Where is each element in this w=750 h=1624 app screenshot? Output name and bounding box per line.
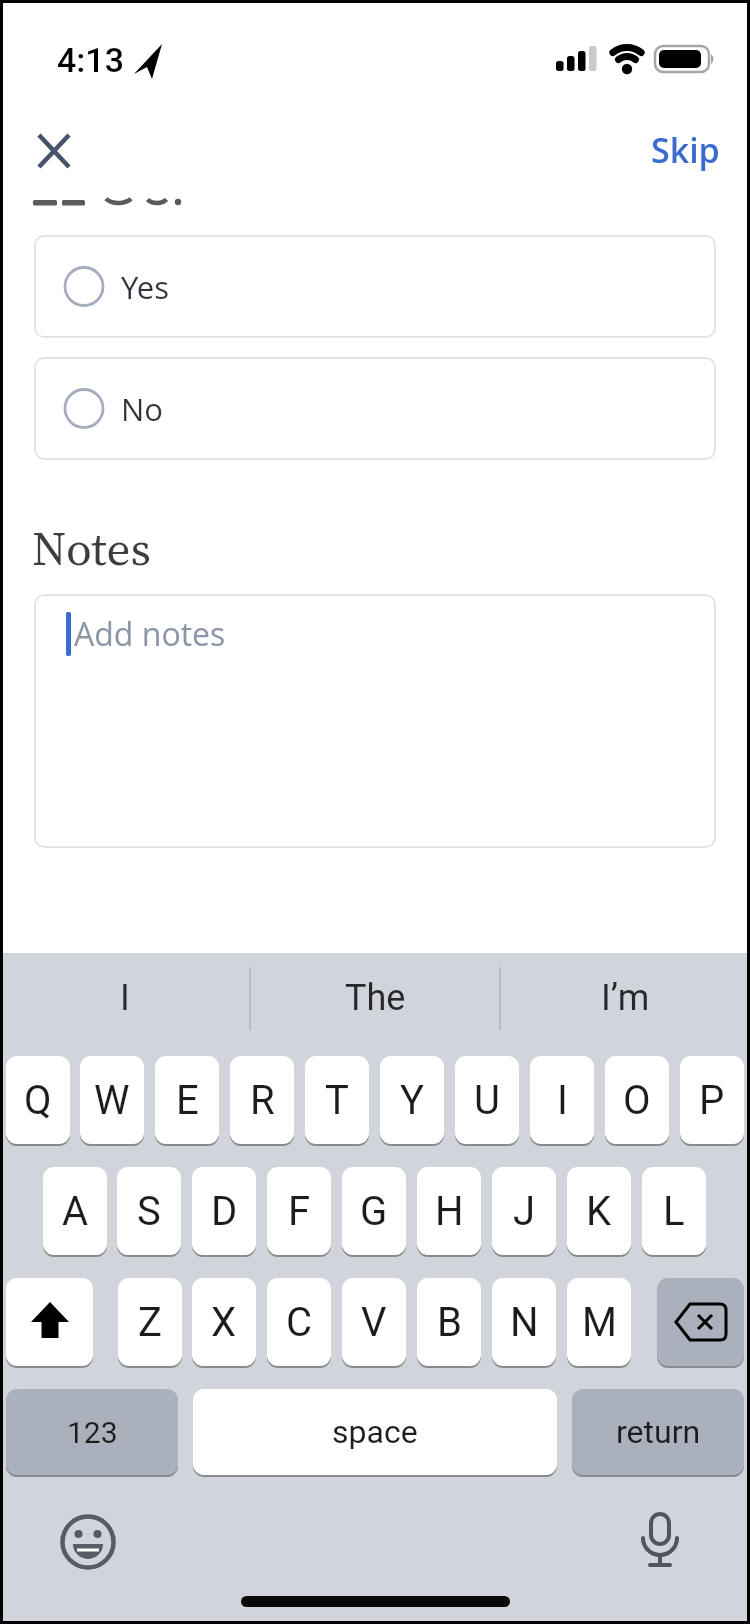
button[interactable]: C bbox=[267, 1278, 331, 1366]
staticText: B bbox=[437, 1299, 462, 1346]
staticText: Q bbox=[24, 1077, 52, 1124]
staticText: Notes bbox=[32, 516, 151, 580]
button[interactable]: H bbox=[417, 1167, 481, 1255]
button[interactable]: W bbox=[80, 1056, 144, 1144]
staticText: M bbox=[582, 1299, 617, 1346]
button[interactable]: P bbox=[680, 1056, 744, 1144]
staticText: The bbox=[345, 977, 406, 1019]
button[interactable] bbox=[657, 1278, 744, 1366]
button[interactable]: Q bbox=[6, 1056, 70, 1144]
staticText: I’m bbox=[601, 977, 650, 1019]
staticText: P bbox=[699, 1077, 725, 1124]
button[interactable]: space bbox=[193, 1389, 557, 1475]
button[interactable]: Yes bbox=[34, 235, 716, 338]
staticText: Yes bbox=[121, 266, 169, 308]
button[interactable]: Y bbox=[380, 1056, 444, 1144]
staticText: T bbox=[325, 1077, 349, 1124]
staticText: V bbox=[361, 1299, 387, 1346]
button[interactable]: I bbox=[0, 953, 250, 1043]
button[interactable]: S bbox=[117, 1167, 181, 1255]
staticText: U bbox=[474, 1077, 500, 1124]
staticText: D bbox=[211, 1188, 238, 1235]
button[interactable]: T bbox=[305, 1056, 369, 1144]
staticText: W bbox=[94, 1077, 130, 1124]
button[interactable]: Skip bbox=[620, 125, 720, 175]
button[interactable]: R bbox=[230, 1056, 294, 1144]
button[interactable] bbox=[60, 1514, 118, 1572]
staticText: space bbox=[332, 1413, 418, 1451]
button[interactable]: M bbox=[567, 1278, 631, 1366]
button[interactable]: 123 bbox=[6, 1389, 178, 1475]
staticText: J bbox=[513, 1188, 536, 1235]
staticText: No bbox=[121, 388, 164, 430]
staticText: Skip bbox=[651, 127, 720, 173]
staticText: Y bbox=[400, 1077, 425, 1124]
button[interactable]: G bbox=[342, 1167, 406, 1255]
staticText: C bbox=[286, 1299, 313, 1346]
staticText: 123 bbox=[67, 1415, 118, 1450]
button[interactable]: J bbox=[492, 1167, 556, 1255]
staticText: H bbox=[435, 1188, 464, 1235]
staticText: G bbox=[360, 1188, 388, 1235]
button[interactable] bbox=[632, 1510, 688, 1574]
button[interactable]: V bbox=[342, 1278, 406, 1366]
staticText: return bbox=[616, 1413, 701, 1451]
button[interactable]: U bbox=[455, 1056, 519, 1144]
button[interactable]: L bbox=[642, 1167, 706, 1255]
button[interactable]: Z bbox=[118, 1278, 182, 1366]
button[interactable]: K bbox=[567, 1167, 631, 1255]
staticText: I bbox=[120, 977, 130, 1019]
button[interactable]: No bbox=[34, 357, 716, 460]
button[interactable]: O bbox=[605, 1056, 669, 1144]
staticText: Add notes bbox=[74, 612, 226, 656]
button[interactable]: I’m bbox=[500, 953, 750, 1043]
staticText: S bbox=[137, 1188, 161, 1235]
staticText: F bbox=[288, 1188, 311, 1235]
button[interactable]: X bbox=[192, 1278, 256, 1366]
button[interactable]: Add notes bbox=[34, 594, 716, 848]
button[interactable]: N bbox=[492, 1278, 556, 1366]
staticText: Z bbox=[138, 1299, 162, 1346]
staticText: E bbox=[176, 1077, 199, 1124]
staticText: 4:13 bbox=[57, 40, 124, 80]
button[interactable]: F bbox=[267, 1167, 331, 1255]
button[interactable]: B bbox=[417, 1278, 481, 1366]
staticText: L bbox=[663, 1188, 685, 1235]
button[interactable]: return bbox=[572, 1389, 744, 1475]
button[interactable]: I bbox=[530, 1056, 594, 1144]
button[interactable]: E bbox=[155, 1056, 219, 1144]
staticText: I bbox=[557, 1077, 568, 1124]
button[interactable] bbox=[26, 122, 82, 178]
staticText: O bbox=[623, 1077, 651, 1124]
staticText: X bbox=[211, 1299, 237, 1346]
staticText: A bbox=[62, 1188, 89, 1235]
button[interactable]: D bbox=[192, 1167, 256, 1255]
staticText: R bbox=[250, 1077, 275, 1124]
button[interactable] bbox=[6, 1278, 93, 1366]
button[interactable]: A bbox=[43, 1167, 107, 1255]
button[interactable]: The bbox=[250, 953, 500, 1043]
staticText: K bbox=[586, 1188, 612, 1235]
staticText: N bbox=[510, 1299, 539, 1346]
